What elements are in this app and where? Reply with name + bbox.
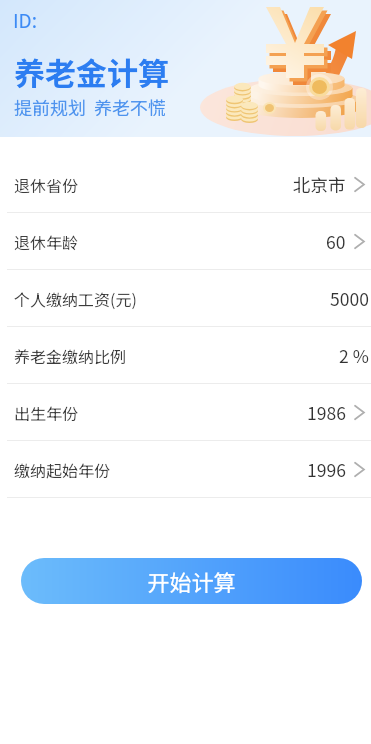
button[interactable]: 退休年龄 — [0, 213, 371, 270]
staticText: 养老金缴纳比例 — [14, 344, 127, 367]
staticText: 缴纳起始年份 — [14, 458, 111, 481]
staticText: 个人缴纳工资(元) — [14, 287, 137, 310]
staticText: 1986 — [307, 400, 346, 425]
button[interactable]: 开始计算 — [21, 558, 362, 604]
staticText: 提前规划 养老不慌 — [14, 94, 167, 120]
staticText: 出生年份 — [14, 401, 79, 424]
other: 选择 — [354, 234, 369, 249]
staticText: 北京市 — [293, 172, 346, 197]
staticText: 退休省份 — [14, 173, 79, 196]
other: 选择 — [354, 462, 369, 477]
staticText: 退休年龄 — [14, 230, 79, 253]
staticText: 养老金计算 — [14, 49, 169, 94]
staticText: 5000 — [330, 286, 369, 311]
staticText: 2 % — [339, 343, 369, 368]
staticText: 1996 — [307, 457, 346, 482]
button[interactable]: 个人缴纳工资(元) — [0, 270, 371, 327]
staticText: 开始计算 — [147, 565, 236, 597]
staticText: 60 — [326, 229, 346, 254]
other: 选择 — [354, 177, 369, 192]
staticText: ID: — [13, 6, 37, 34]
button[interactable]: 退休省份 — [0, 156, 371, 213]
button[interactable]: 养老金缴纳比例 — [0, 327, 371, 384]
button[interactable]: 出生年份 — [0, 384, 371, 441]
button[interactable]: 缴纳起始年份 — [0, 441, 371, 498]
other: 选择 — [354, 405, 369, 420]
